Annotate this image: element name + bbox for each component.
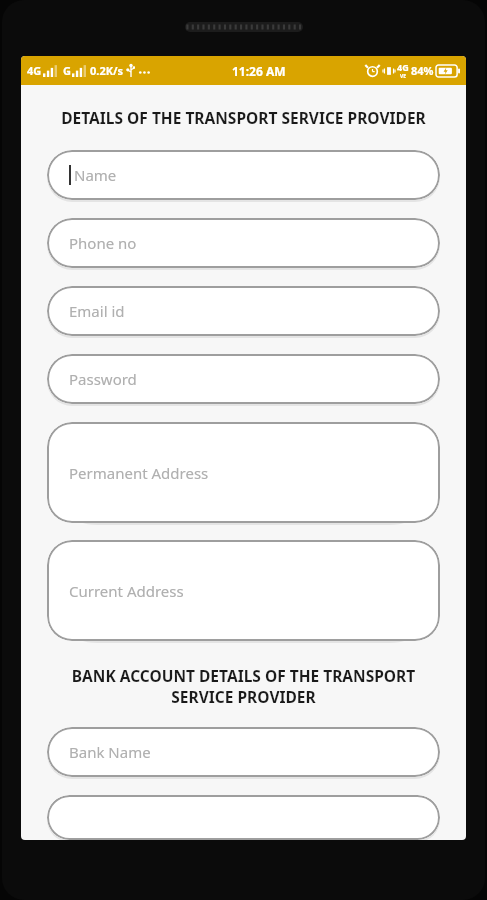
staticText: 11:26 AM xyxy=(232,63,286,79)
staticText: Email id xyxy=(69,301,125,321)
staticText: Permanent Address xyxy=(69,463,209,483)
staticText: Current Address xyxy=(69,581,184,601)
staticText: Bank Name xyxy=(69,742,151,762)
button[interactable]: Bank Name xyxy=(47,727,440,777)
staticText: 4G xyxy=(27,63,42,78)
button[interactable]: Current Address xyxy=(47,540,440,641)
staticText: Name xyxy=(74,165,117,185)
button[interactable]: Email id xyxy=(47,286,440,336)
button[interactable]: Password xyxy=(47,354,440,404)
staticText: VE xyxy=(400,73,407,80)
staticText: DETAILS OF THE TRANSPORT SERVICE PROVIDE… xyxy=(43,107,444,128)
staticText: Phone no xyxy=(69,233,137,253)
staticText: 4G xyxy=(397,61,409,73)
button[interactable]: Name xyxy=(47,150,440,200)
staticText: 84% xyxy=(411,63,434,78)
button[interactable]: Phone no xyxy=(47,218,440,268)
button[interactable]: Permanent Address xyxy=(47,422,440,523)
staticText: G xyxy=(63,63,71,78)
button[interactable] xyxy=(47,795,440,840)
staticText: 0.2K/s xyxy=(90,63,124,78)
staticText: BANK ACCOUNT DETAILS OF THE TRANSPORT SE… xyxy=(43,665,444,708)
staticText: Password xyxy=(69,369,137,389)
